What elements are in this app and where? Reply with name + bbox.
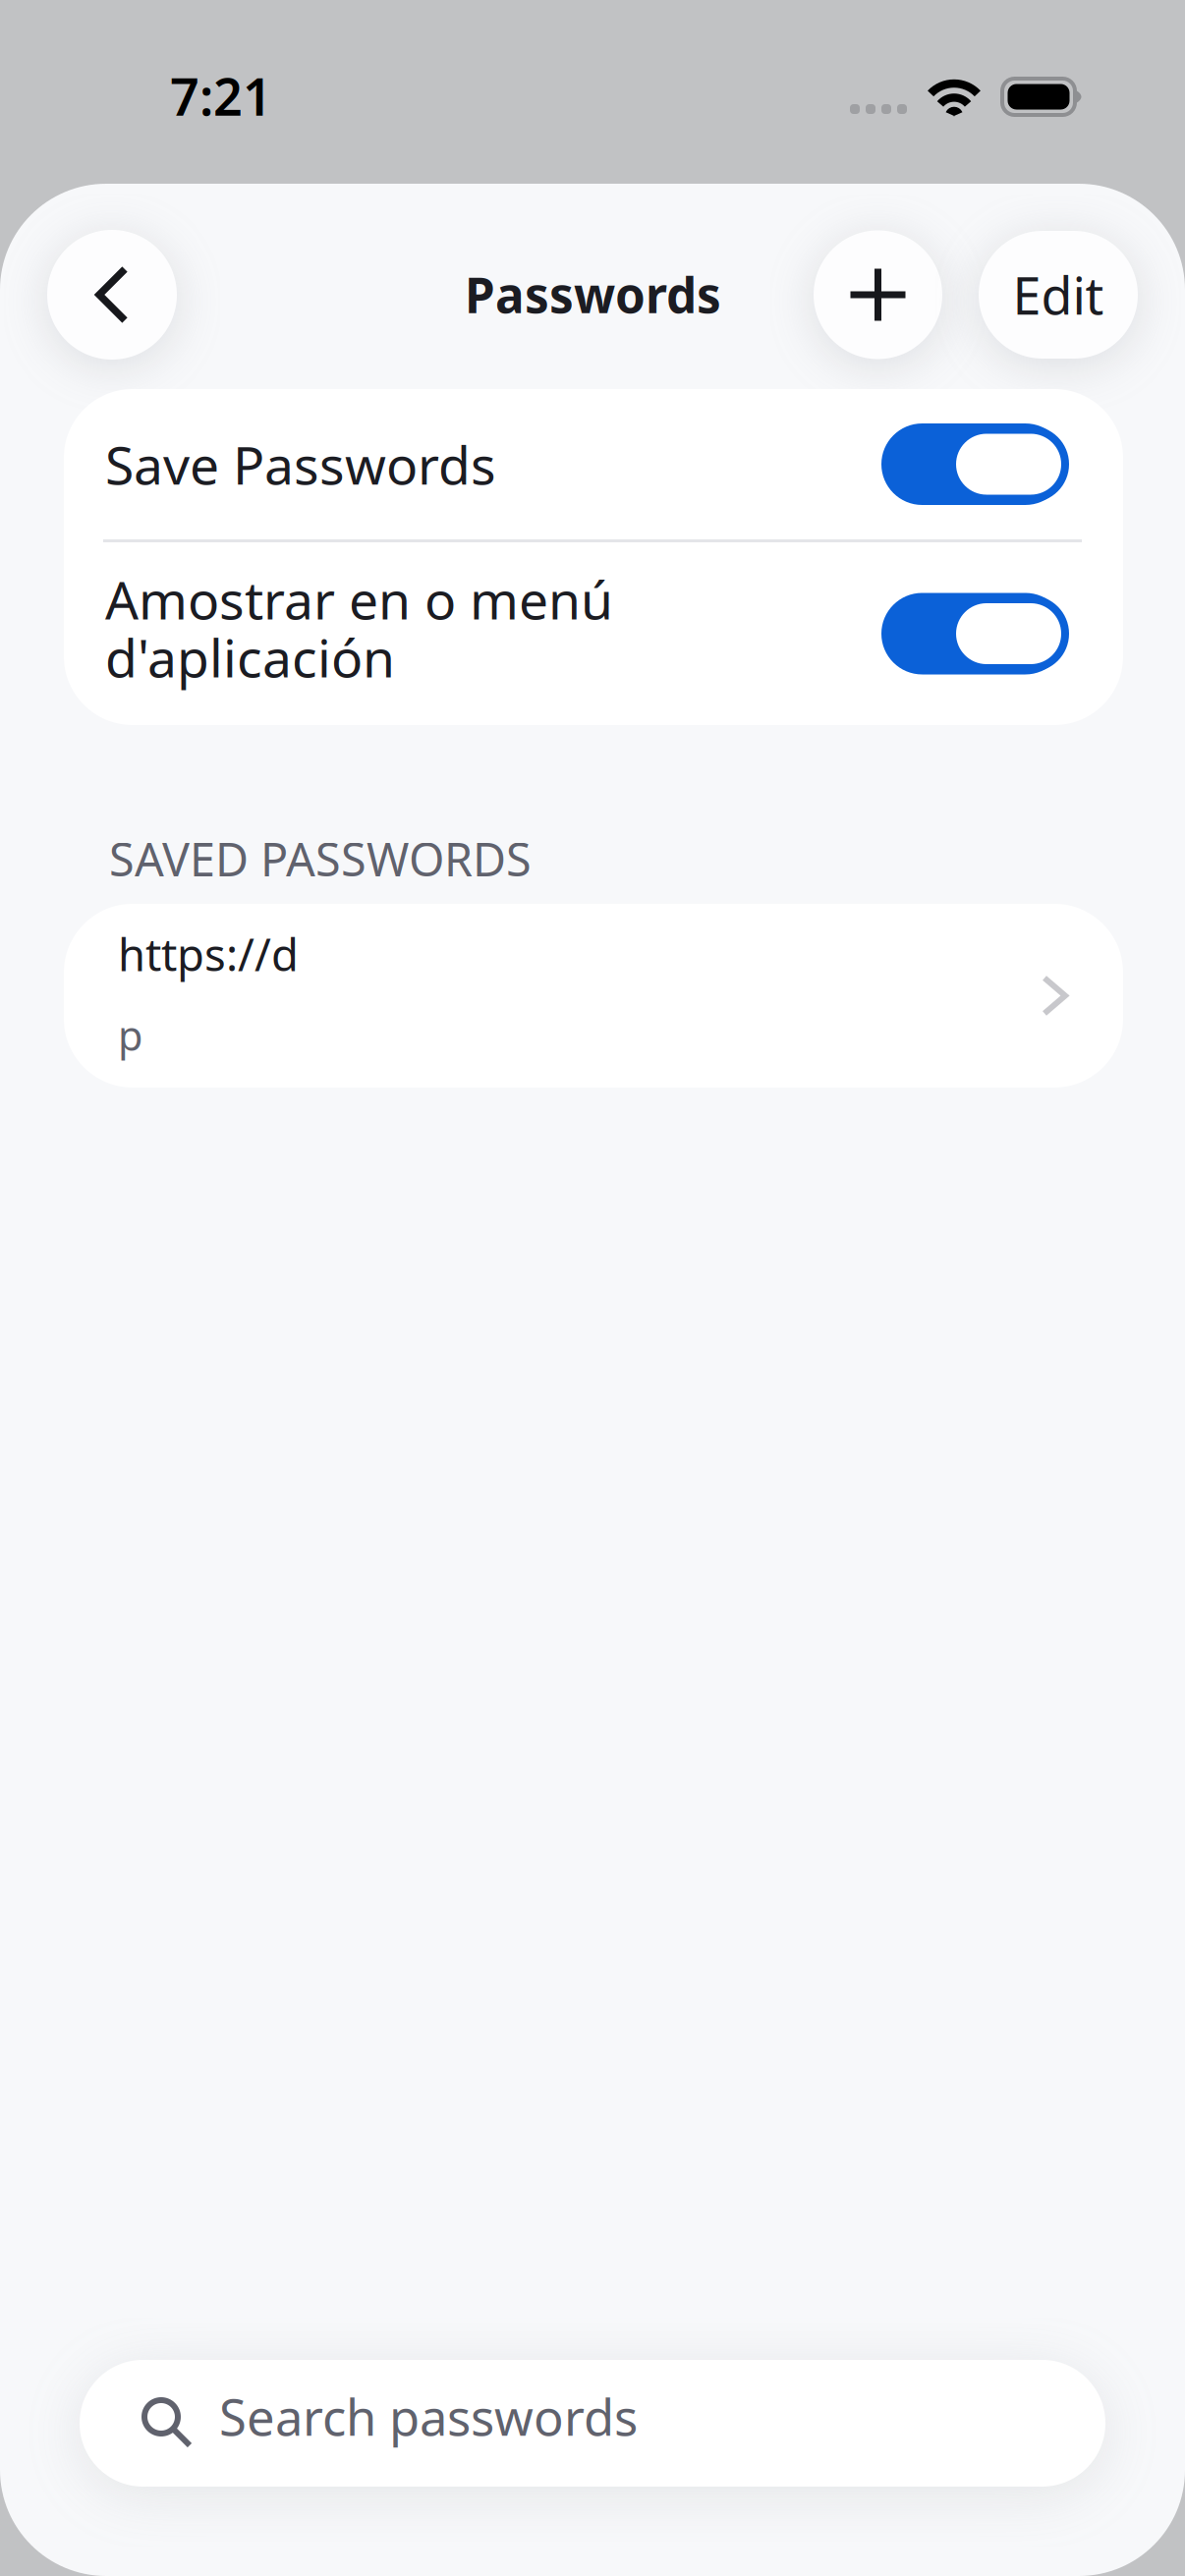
button[interactable]: Add password	[814, 230, 942, 359]
button[interactable]: Edit	[979, 231, 1138, 359]
button[interactable]: Save Passwords	[64, 389, 1123, 539]
staticText: d'aplicación	[105, 622, 395, 692]
staticText: Search passwords	[219, 2383, 638, 2449]
staticText: Edit	[1013, 261, 1104, 329]
staticText: Passwords	[465, 262, 721, 326]
staticText: p	[118, 1008, 142, 1062]
button[interactable]: https://d	[64, 904, 1123, 1088]
staticText: Save Passwords	[105, 429, 496, 499]
button[interactable]: Back	[47, 230, 177, 360]
staticText: SAVED PASSWORDS	[109, 828, 532, 889]
button[interactable]: Amostrar en o menú	[64, 542, 1123, 725]
staticText: https://d	[118, 924, 299, 984]
staticText: 7:21	[170, 62, 272, 130]
staticText: Amostrar en o menú	[105, 564, 613, 634]
